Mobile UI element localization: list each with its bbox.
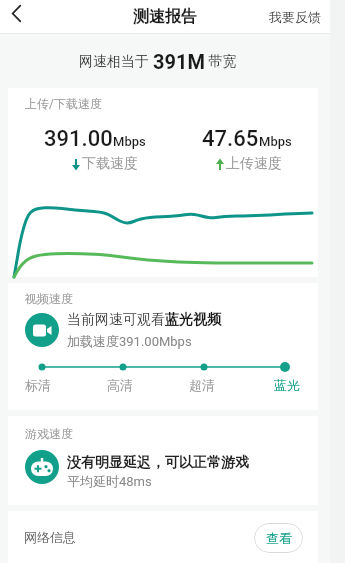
staticText: 视频速度 [25,291,73,306]
staticText: 没有明显延迟，可以正常游戏 [67,454,249,472]
staticText: 查看 [266,530,292,546]
button[interactable] [0,0,36,33]
button[interactable]: 蓝光 [247,377,327,393]
staticText: 带宽 [205,53,237,71]
staticText: 391M [153,50,205,73]
staticText: 超清 [189,377,215,393]
staticText: 标清 [25,377,51,393]
button[interactable]: 我要反馈 [269,9,330,25]
staticText: 加载速度391.00Mbps [67,333,192,349]
staticText: 游戏速度 [25,426,73,441]
staticText: 391.00 [44,126,113,152]
staticText: 上传/下载速度 [25,96,102,111]
staticText: Mbps [113,134,146,149]
staticText: 平均延时48ms [67,473,152,489]
staticText: Mbps [259,134,292,149]
button[interactable]: 查看 [254,523,303,553]
staticText: 网络信息 [24,529,76,545]
staticText: 47.65 [202,126,259,152]
staticText: 我要反馈 [269,9,321,25]
staticText: 测速报告 [133,7,197,27]
staticText: 高清 [107,377,133,393]
staticText: 上传速度 [226,155,282,173]
staticText: 当前网速可观看蓝光视频 [67,311,221,329]
staticText: 蓝光 [274,377,300,393]
staticText: 网速相当于 [79,53,153,71]
staticText: 下载速度 [82,155,138,173]
